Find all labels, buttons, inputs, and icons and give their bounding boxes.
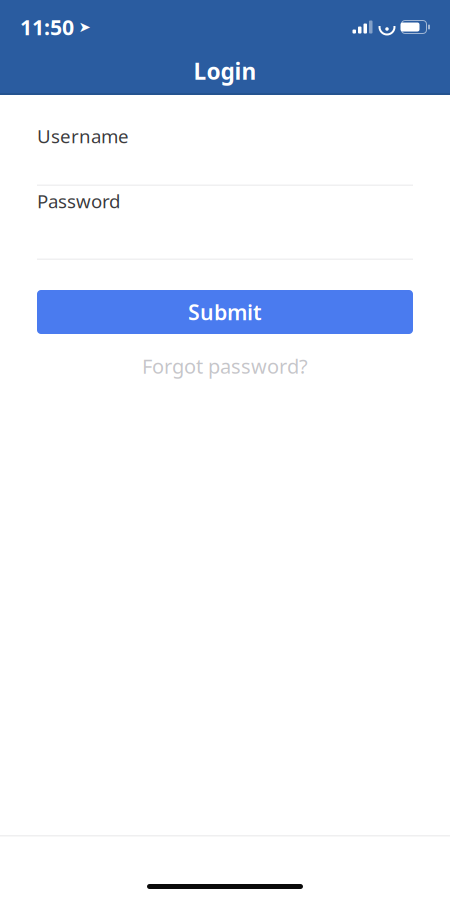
staticText: ➤ [78, 19, 90, 35]
staticText: 11:50 [20, 13, 74, 41]
button[interactable]: Submit [37, 290, 413, 334]
button[interactable]: Forgot password? [37, 351, 413, 381]
staticText: Forgot password? [142, 353, 308, 379]
staticText: Submit [188, 298, 262, 326]
staticText: Password [37, 189, 120, 213]
staticText: Username [37, 124, 129, 148]
staticText: Login [193, 56, 256, 86]
